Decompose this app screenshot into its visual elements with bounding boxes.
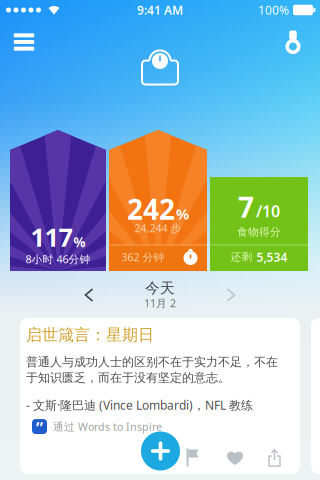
staticText: 于知识匮乏，而在于没有坚定的意志。 <box>26 370 230 385</box>
button[interactable]: Menu <box>14 33 34 51</box>
button[interactable]: 启世箴言：星期日 <box>26 325 154 345</box>
staticText: 还剩 <box>230 250 252 263</box>
staticText: 11月 2 <box>144 296 176 310</box>
button[interactable]: Report <box>186 448 199 466</box>
staticText: 24,244 步 <box>134 221 181 235</box>
staticText: 100% <box>258 2 289 18</box>
staticText: 普通人与成功人士的区别不在于实力不足，不在 <box>26 355 278 369</box>
staticText: 242 <box>127 190 175 228</box>
button[interactable]: Previous day <box>85 289 92 301</box>
staticText: 5,534 <box>256 249 287 265</box>
staticText: 117 <box>30 220 72 254</box>
button[interactable]: Add <box>141 431 180 470</box>
staticText: 7 <box>238 188 254 226</box>
button[interactable]: Share <box>268 449 281 467</box>
staticText: 9:41 AM <box>137 2 183 18</box>
staticText: % <box>73 233 85 251</box>
staticText: - 文斯·隆巴迪 (Vince Lombardi)，NFL 教练 <box>26 397 253 413</box>
staticText: 食物得分 <box>237 225 281 238</box>
staticText: 启世箴言：星期日 <box>26 325 154 345</box>
staticText: ” <box>36 417 43 439</box>
button[interactable]: Next day <box>227 289 234 301</box>
button[interactable]: Log weight <box>141 51 179 86</box>
staticText: 362 分钟 <box>121 250 164 264</box>
staticText: % <box>176 204 189 224</box>
staticText: 通过 Words to Inspire <box>53 419 162 434</box>
button[interactable]: Like <box>227 451 243 465</box>
staticText: /10 <box>256 200 280 221</box>
staticText: 今天 <box>145 279 175 297</box>
staticText: 8小时 46分钟 <box>25 252 90 266</box>
button[interactable]: Band <box>283 30 303 53</box>
